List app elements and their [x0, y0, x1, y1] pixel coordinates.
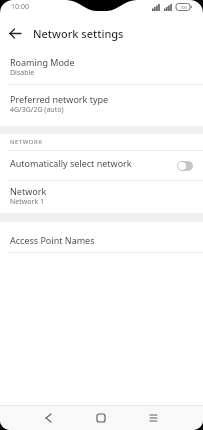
button[interactable]: Network: [0, 181, 203, 213]
button[interactable]: Roaming Mode: [0, 52, 203, 84]
staticText: Preferred network type: [10, 93, 109, 105]
staticText: NETWORK: [10, 138, 43, 146]
staticText: Roaming Mode: [10, 56, 75, 68]
button[interactable]: Automatically select network: [0, 151, 203, 180]
button[interactable]: [177, 161, 193, 171]
staticText: 10:00: [11, 2, 29, 12]
staticText: Disable: [10, 68, 35, 78]
button[interactable]: Preferred network type: [0, 85, 203, 126]
button[interactable]: [36, 406, 60, 430]
staticText: Automatically select network: [10, 157, 132, 169]
staticText: Access Point Names: [10, 234, 95, 246]
staticText: 4G/3G/2G (auto): [10, 105, 64, 115]
button[interactable]: Access Point Names: [0, 222, 203, 252]
staticText: Network 1: [10, 197, 44, 207]
staticText: Network settings: [33, 26, 124, 41]
button[interactable]: [141, 406, 165, 430]
button[interactable]: [0, 18, 30, 48]
staticText: 100: [180, 5, 187, 10]
staticText: Network: [10, 185, 47, 197]
button[interactable]: [89, 406, 113, 430]
